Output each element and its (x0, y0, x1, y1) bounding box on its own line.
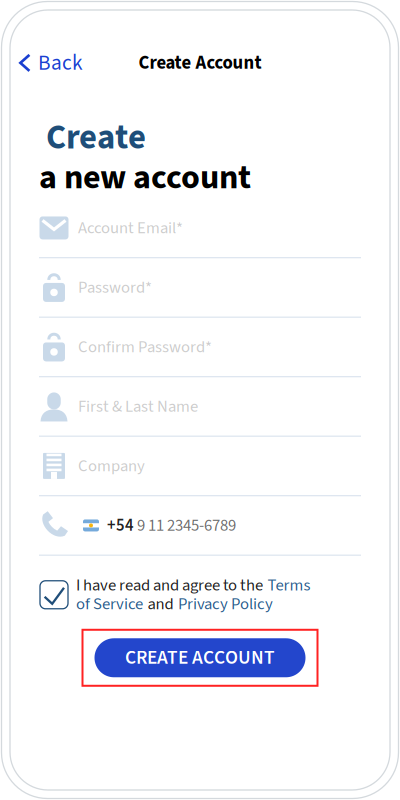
staticText: and (147, 592, 173, 616)
staticText: Back (38, 48, 83, 78)
button[interactable]: Agree to terms (39, 573, 69, 617)
staticText: of Service (76, 592, 143, 616)
staticText: +54 (107, 514, 134, 537)
staticText: First & Last Name (78, 395, 198, 418)
staticText: Terms (267, 573, 310, 597)
staticText: Create (46, 113, 146, 162)
staticText: Confirm Password* (78, 335, 212, 359)
staticText: Privacy Policy (178, 592, 273, 616)
staticText: Account Email* (78, 216, 183, 240)
staticText: Company (78, 454, 145, 478)
button[interactable]: Back (0, 46, 95, 80)
staticText: CREATE ACCOUNT (125, 644, 275, 671)
button[interactable]: CREATE ACCOUNT (94, 638, 305, 677)
staticText: a new account (39, 153, 251, 202)
staticText: 9 11 2345-6789 (137, 514, 236, 537)
staticText: Create Account (138, 50, 261, 76)
staticText: Password* (78, 276, 152, 299)
staticText: I have read and agree to the (76, 573, 263, 597)
